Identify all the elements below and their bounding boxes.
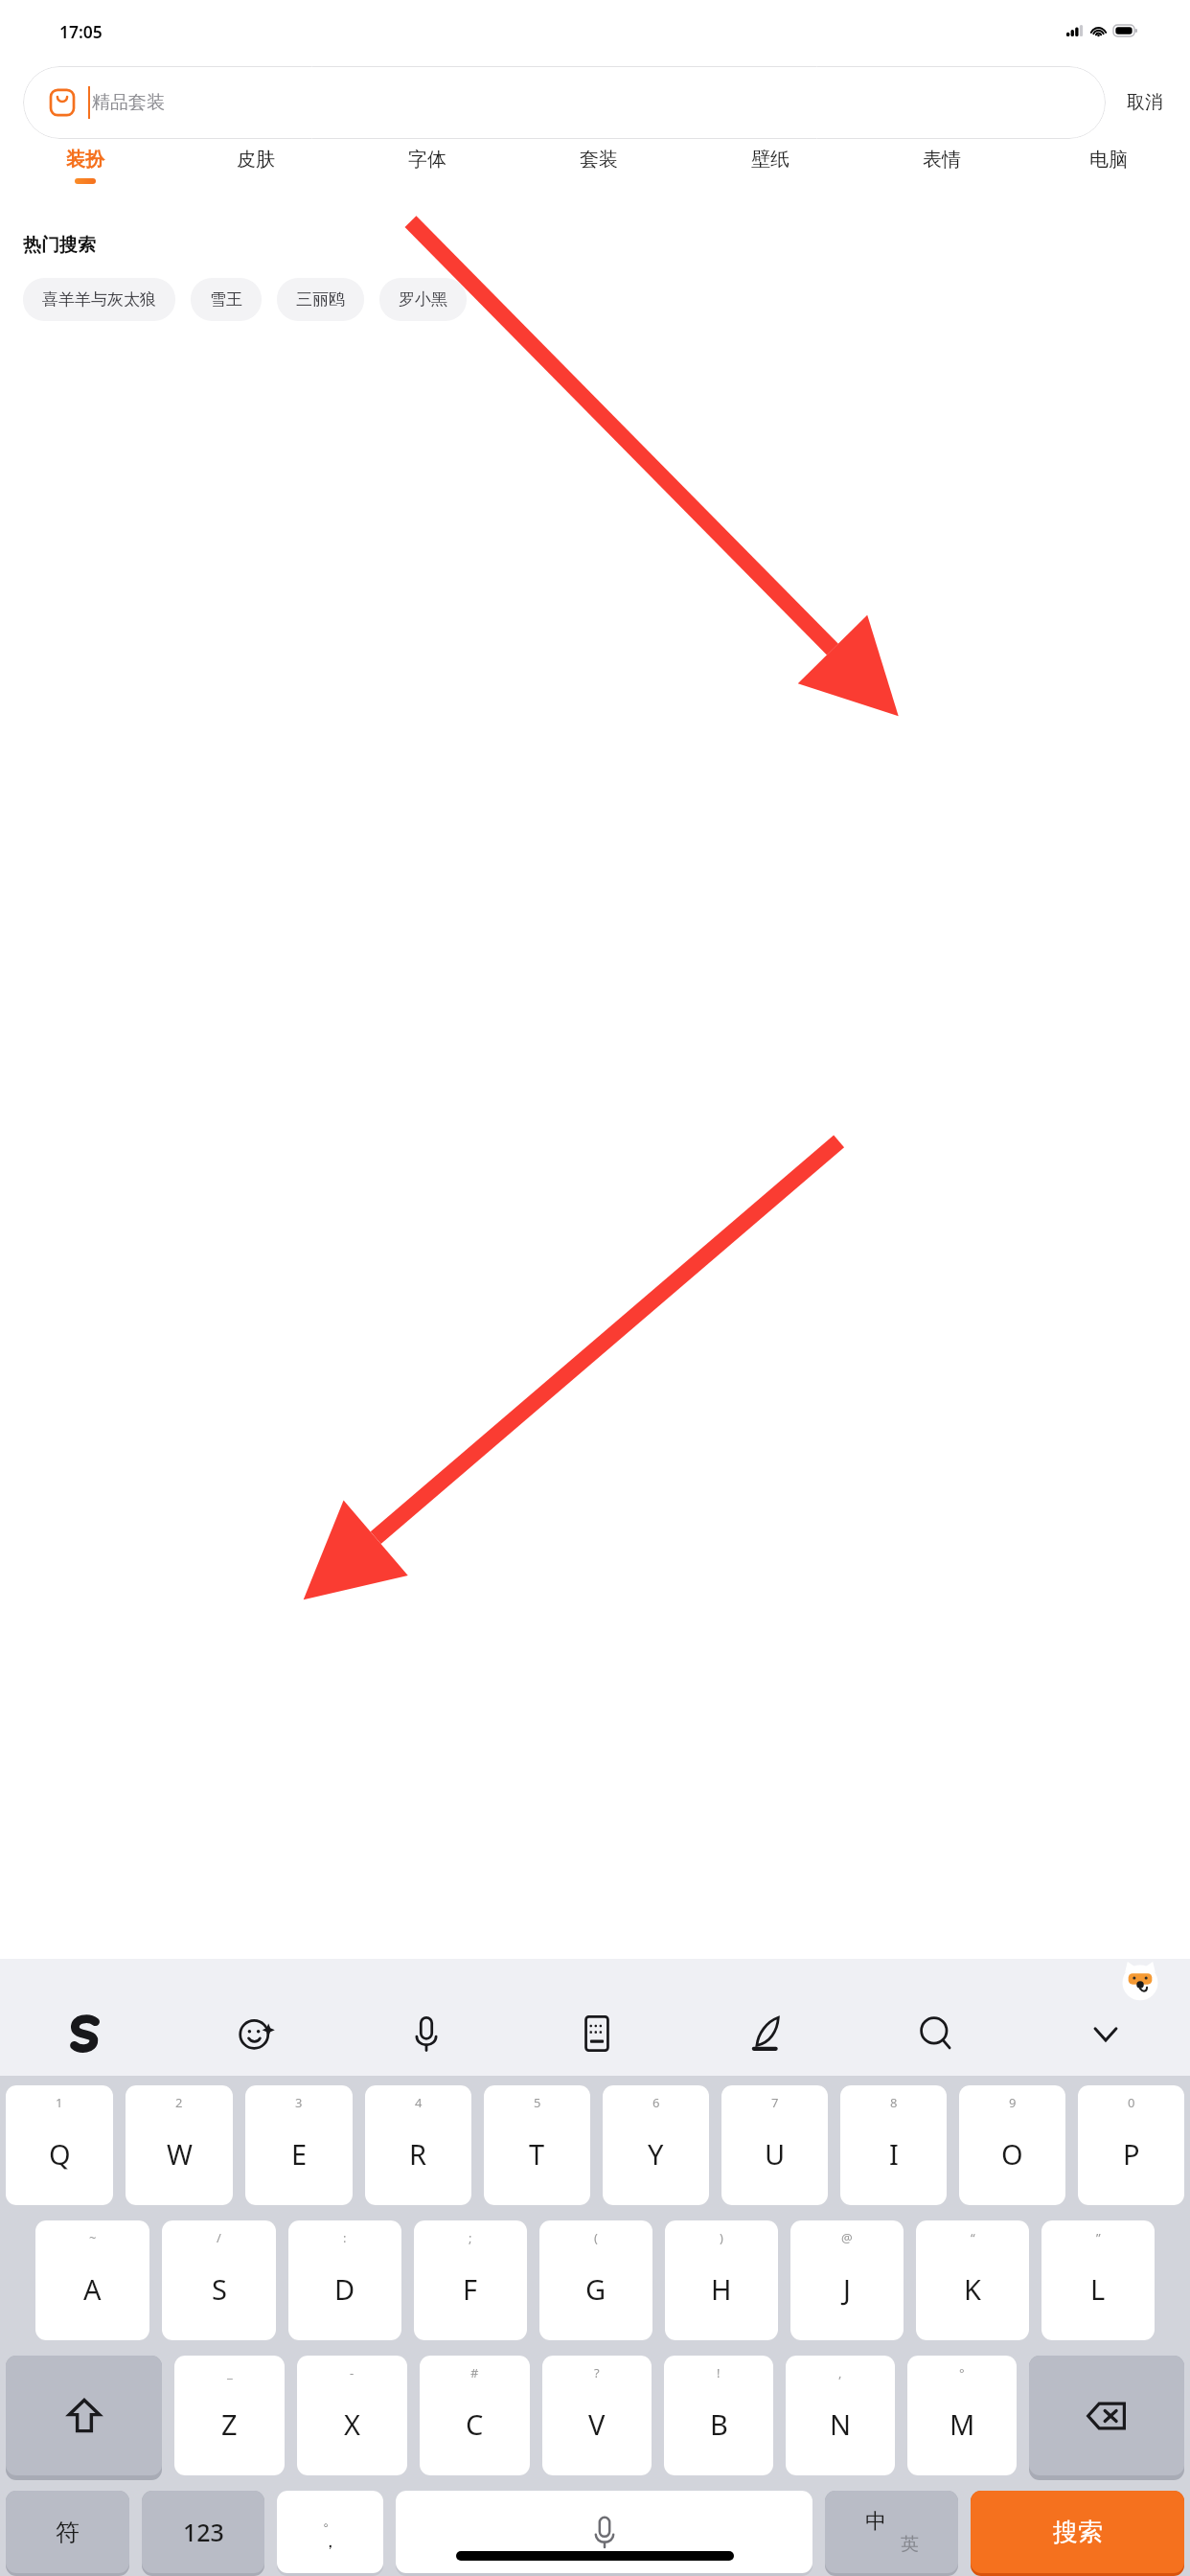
button[interactable]: ! — [664, 2356, 773, 2475]
staticText: 英 — [901, 2533, 919, 2556]
staticText: U — [765, 2135, 786, 2173]
button[interactable]: 符 — [6, 2491, 129, 2573]
staticText: ， — [321, 2530, 339, 2553]
button[interactable]: 壁纸 — [684, 148, 856, 207]
staticText: E — [291, 2135, 308, 2173]
staticText: ; — [469, 2229, 472, 2246]
staticText: 套装 — [580, 148, 618, 172]
button[interactable]: 123 — [142, 2491, 264, 2573]
staticText: 2 — [175, 2094, 183, 2111]
staticText: ° — [959, 2364, 965, 2381]
button[interactable]: 5 — [484, 2085, 590, 2205]
button[interactable]: 4 — [365, 2085, 471, 2205]
button[interactable]: : — [288, 2220, 401, 2340]
staticText: O — [1001, 2135, 1023, 2173]
button[interactable]: Shift — [6, 2356, 162, 2475]
button[interactable]: “ — [916, 2220, 1029, 2340]
staticText: ” — [1096, 2229, 1101, 2246]
staticText: I — [889, 2135, 899, 2173]
button[interactable]: Emoji — [171, 1997, 341, 2070]
staticText: 表情 — [923, 148, 961, 172]
staticText: 8 — [890, 2094, 898, 2111]
button[interactable]: Space — [396, 2491, 812, 2573]
button[interactable]: ( — [539, 2220, 652, 2340]
staticText: K — [964, 2270, 981, 2308]
button[interactable]: Backspace — [1029, 2356, 1184, 2475]
staticText: 三丽鸥 — [296, 289, 345, 310]
staticText: / — [217, 2229, 221, 2246]
staticText: T — [529, 2135, 545, 2173]
staticText: X — [344, 2405, 360, 2443]
button[interactable]: 装扮 — [0, 148, 171, 207]
button[interactable]: Keyboard — [512, 1997, 681, 2070]
staticText: D — [334, 2270, 355, 2308]
button[interactable]: 套装 — [513, 148, 684, 207]
staticText: L — [1090, 2270, 1106, 2308]
staticText: ~ — [89, 2229, 97, 2246]
staticText: F — [463, 2270, 478, 2308]
staticText: , — [838, 2364, 842, 2381]
button[interactable]: Collapse — [1020, 1997, 1190, 2070]
button[interactable]: 8 — [840, 2085, 947, 2205]
button[interactable]: 2 — [126, 2085, 233, 2205]
button[interactable]: 6 — [603, 2085, 709, 2205]
button[interactable]: @ — [790, 2220, 904, 2340]
staticText: 电脑 — [1089, 148, 1128, 172]
staticText: 123 — [183, 2516, 224, 2548]
staticText: 5 — [534, 2094, 541, 2111]
staticText: 精品套装 — [92, 91, 165, 114]
staticText: 4 — [415, 2094, 423, 2111]
button[interactable]: 9 — [959, 2085, 1065, 2205]
button[interactable]: 皮肤 — [171, 148, 341, 207]
staticText: B — [710, 2405, 728, 2443]
button[interactable]: , — [786, 2356, 895, 2475]
staticText: 1 — [56, 2094, 63, 2111]
button[interactable]: 喜羊羊与灰太狼 — [23, 278, 175, 321]
button[interactable]: 精品套装 — [23, 66, 1106, 139]
button[interactable]: 取消 — [1106, 80, 1167, 126]
button[interactable]: # — [420, 2356, 530, 2475]
button[interactable]: Handwriting — [681, 1997, 851, 2070]
staticText: P — [1123, 2135, 1140, 2173]
button[interactable]: Voice input — [341, 1997, 512, 2070]
button[interactable]: 罗小黑 — [379, 278, 467, 321]
button[interactable]: ; — [414, 2220, 527, 2340]
staticText: 壁纸 — [751, 148, 790, 172]
staticText: 6 — [652, 2094, 660, 2111]
staticText: 3 — [295, 2094, 303, 2111]
button[interactable]: Chinese English toggle — [825, 2491, 958, 2573]
button[interactable]: ) — [665, 2220, 778, 2340]
button[interactable]: Search — [851, 1997, 1020, 2070]
staticText: “ — [971, 2229, 975, 2246]
staticText: Y — [648, 2135, 664, 2173]
button[interactable]: Sogou — [0, 1997, 171, 2070]
staticText: ! — [717, 2364, 721, 2381]
button[interactable]: 雪王 — [191, 278, 262, 321]
staticText: H — [711, 2270, 732, 2308]
button[interactable]: ? — [542, 2356, 652, 2475]
button[interactable]: ~ — [35, 2220, 149, 2340]
button[interactable]: Punctuation — [277, 2491, 383, 2573]
button[interactable]: _ — [174, 2356, 285, 2475]
button[interactable]: / — [162, 2220, 276, 2340]
button[interactable]: 电脑 — [1027, 148, 1190, 207]
staticText: V — [588, 2405, 606, 2443]
staticText: ) — [720, 2229, 723, 2246]
staticText: - — [350, 2364, 355, 2381]
staticText: 符 — [56, 2518, 80, 2547]
button[interactable]: - — [297, 2356, 407, 2475]
button[interactable]: 0 — [1078, 2085, 1184, 2205]
button[interactable]: 三丽鸥 — [277, 278, 364, 321]
button[interactable]: 7 — [721, 2085, 828, 2205]
button[interactable]: Mascot — [1119, 1961, 1161, 2003]
button[interactable]: ” — [1041, 2220, 1155, 2340]
staticText: 取消 — [1127, 91, 1163, 114]
button[interactable]: 1 — [6, 2085, 113, 2205]
staticText: R — [409, 2135, 427, 2173]
button[interactable]: 表情 — [856, 148, 1027, 207]
button[interactable]: 搜索 — [971, 2491, 1184, 2573]
button[interactable]: 字体 — [341, 148, 513, 207]
button[interactable]: ° — [907, 2356, 1017, 2475]
button[interactable]: 3 — [245, 2085, 353, 2205]
staticText: A — [83, 2270, 102, 2308]
